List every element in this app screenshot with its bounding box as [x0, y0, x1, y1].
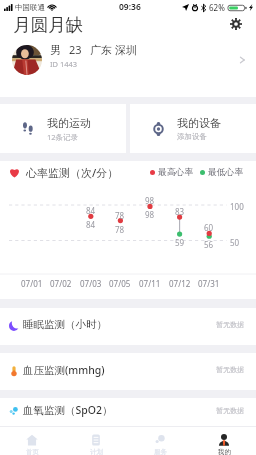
staticText: 98: [145, 195, 155, 206]
button[interactable]: 服务: [128, 427, 192, 455]
staticText: 07/03: [80, 278, 102, 289]
button[interactable]: 我的: [192, 427, 256, 455]
button[interactable]: 血氧监测（SpO2）: [0, 398, 256, 426]
staticText: 23: [69, 42, 82, 57]
button[interactable]: 计划: [64, 427, 128, 455]
staticText: 09:36: [119, 1, 141, 13]
staticText: 我的设备: [177, 116, 221, 130]
staticText: 血压监测(mmhg): [23, 363, 105, 377]
button[interactable]: 睡眠监测（小时）: [0, 308, 256, 345]
button[interactable]: Settings: [225, 13, 247, 35]
staticText: 最高心率: [158, 167, 194, 178]
button[interactable]: 我的设备: [130, 104, 256, 153]
staticText: 78: [115, 224, 125, 235]
staticText: 83: [175, 206, 185, 217]
staticText: 心率监测（次/分）: [26, 165, 119, 180]
staticText: 我的: [218, 448, 231, 455]
button[interactable]: 心率监测（次/分）: [0, 161, 256, 299]
button[interactable]: 我的运动: [0, 104, 126, 153]
staticText: 计划: [90, 448, 103, 455]
staticText: 07/01: [21, 278, 43, 289]
staticText: 暂无数据: [216, 365, 244, 374]
staticText: 07/11: [139, 278, 161, 289]
staticText: 50: [230, 237, 240, 248]
staticText: 07/02: [50, 278, 72, 289]
staticText: 我的运动: [47, 116, 91, 130]
staticText: 07/12: [169, 278, 191, 289]
staticText: ID 1443: [50, 59, 78, 69]
staticText: 84: [86, 219, 96, 230]
staticText: 首页: [26, 448, 39, 455]
button[interactable]: 首页: [0, 427, 64, 455]
staticText: 60: [204, 222, 214, 233]
staticText: 100: [230, 201, 244, 212]
staticText: 添加设备: [177, 132, 207, 141]
staticText: 07/31: [198, 278, 220, 289]
staticText: 广东 深圳: [90, 42, 137, 57]
staticText: 中国联通: [15, 3, 45, 12]
staticText: 62%: [209, 2, 225, 13]
staticText: 98: [145, 209, 155, 220]
staticText: 男: [50, 43, 61, 57]
staticText: 78: [115, 210, 125, 221]
staticText: 睡眠监测（小时）: [23, 318, 107, 331]
button[interactable]: 男: [0, 39, 256, 81]
button[interactable]: 血压监测(mmhg): [0, 353, 256, 390]
staticText: 月圆月缺: [13, 14, 83, 36]
staticText: 服务: [154, 448, 167, 455]
staticText: 暂无数据: [216, 406, 244, 415]
staticText: 血氧监测（SpO2）: [23, 403, 113, 417]
staticText: 07/05: [109, 278, 131, 289]
staticText: 56: [204, 239, 214, 250]
staticText: 暂无数据: [216, 320, 244, 329]
staticText: 84: [86, 205, 96, 216]
staticText: 12条记录: [47, 132, 79, 142]
staticText: 最低心率: [208, 167, 244, 178]
staticText: 59: [175, 237, 185, 248]
